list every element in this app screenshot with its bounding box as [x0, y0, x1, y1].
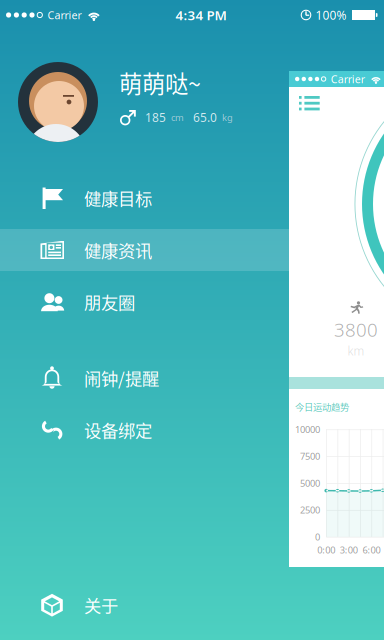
staticText: 设备绑定	[84, 417, 152, 443]
staticText: Carrier	[331, 72, 365, 86]
staticText: 7500	[300, 450, 320, 462]
staticText: 100%	[315, 7, 346, 23]
staticText: 65.0	[193, 109, 217, 125]
staticText: Carrier	[47, 8, 81, 22]
staticText: 3:00	[340, 544, 358, 556]
button[interactable]: Menu	[289, 87, 332, 120]
button[interactable]: 健康资讯	[0, 229, 289, 271]
staticText: 萌萌哒~	[119, 66, 201, 99]
staticText: 关于	[84, 592, 118, 618]
staticText: 3800	[334, 317, 378, 342]
button[interactable]: 闹钟/提醒	[0, 357, 289, 399]
button[interactable]: 关于	[0, 584, 289, 626]
button[interactable]: 朋友圈	[0, 281, 289, 323]
staticText: 健康目标	[84, 185, 152, 211]
button[interactable]: 设备绑定	[0, 409, 289, 451]
staticText: 185	[145, 109, 166, 125]
staticText: cm	[171, 111, 184, 124]
staticText: 健康资讯	[84, 237, 152, 263]
staticText: km	[347, 343, 364, 359]
staticText: 朋友圈	[84, 289, 135, 315]
staticText: 0	[315, 531, 320, 543]
staticText: 2500	[300, 504, 320, 516]
staticText: 0:00	[317, 544, 335, 556]
staticText: 闹钟/提醒	[84, 365, 159, 391]
staticText: kg	[222, 111, 233, 124]
staticText: 10000	[295, 423, 320, 436]
staticText: 4:34 PM	[175, 6, 226, 24]
button[interactable]: 健康目标	[0, 177, 289, 219]
staticText: 6:00	[362, 544, 380, 556]
staticText: 5000	[300, 477, 320, 489]
staticText: 今日运动趋势	[295, 400, 349, 413]
